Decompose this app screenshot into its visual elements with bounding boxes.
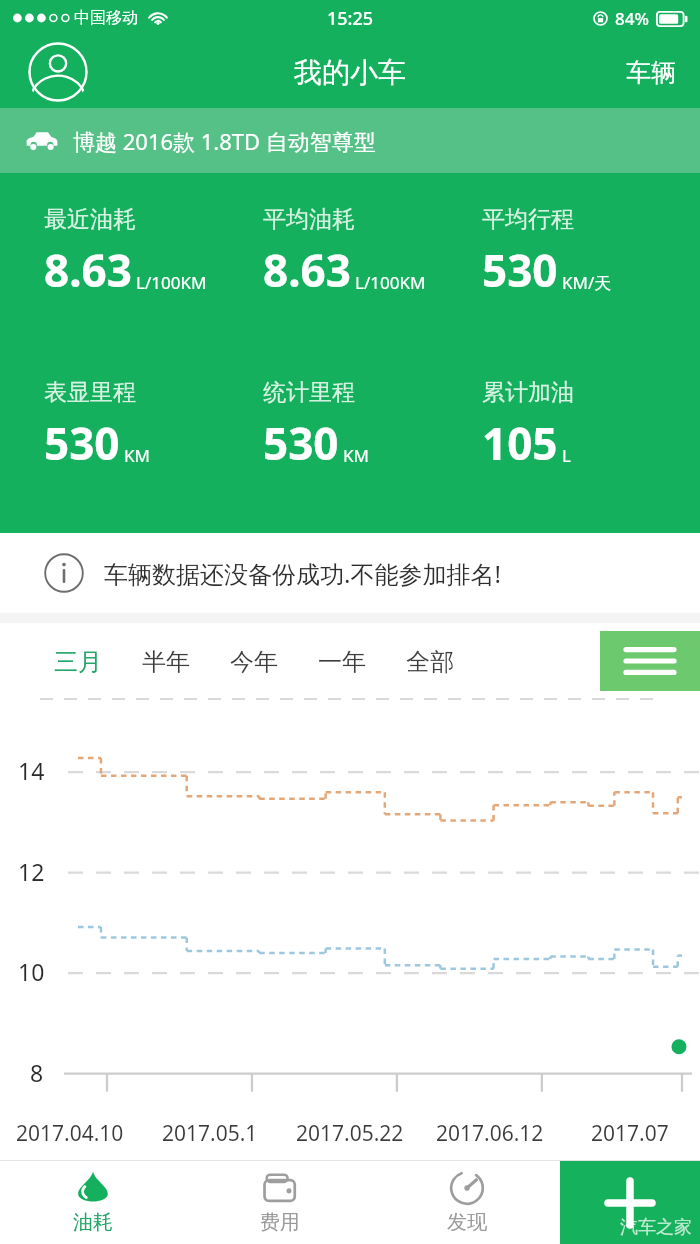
staticText: 2017.05.1 (162, 1119, 258, 1148)
staticText: L/100KM (136, 271, 207, 294)
staticText: 平均行程 (482, 205, 574, 234)
button[interactable]: 平均行程 (482, 205, 674, 300)
staticText: 表显里程 (44, 378, 136, 407)
staticText: 今年 (230, 647, 278, 677)
staticText: 8 (30, 1057, 44, 1088)
staticText: 半年 (142, 647, 190, 677)
button[interactable]: 一年 (308, 637, 376, 687)
button[interactable]: 平均油耗 (263, 205, 482, 300)
staticText: KM/天 (562, 271, 612, 294)
staticText: 530 (263, 413, 339, 473)
button[interactable]: Add record (560, 1161, 700, 1244)
button[interactable]: 油耗 (0, 1161, 186, 1244)
staticText: 530 (44, 413, 120, 473)
staticText: 最近油耗 (44, 205, 136, 234)
button[interactable]: 统计里程 (263, 378, 482, 473)
staticText: 平均油耗 (263, 205, 355, 234)
staticText: KM (343, 444, 369, 467)
staticText: 车辆数据还没备份成功.不能参加排名! (104, 557, 501, 590)
button[interactable]: 车辆数据还没备份成功.不能参加排名! (0, 533, 700, 613)
button[interactable]: 累计加油 (482, 378, 674, 473)
staticText: L (562, 444, 571, 467)
staticText: 车辆 (626, 57, 676, 88)
button[interactable]: 博越 2016款 1.8TD 自动智尊型 (0, 108, 700, 173)
button[interactable]: 全部 (396, 637, 464, 687)
button[interactable]: 最近油耗 (44, 205, 263, 300)
button[interactable]: Menu (600, 631, 700, 691)
staticText: L/100KM (355, 271, 426, 294)
staticText: 105 (482, 413, 558, 473)
staticText: 发现 (447, 1210, 487, 1235)
staticText: 530 (482, 240, 558, 300)
staticText: 12 (18, 856, 45, 887)
staticText: KM (124, 444, 150, 467)
staticText: 8.63 (263, 240, 351, 300)
staticText: 累计加油 (482, 378, 574, 407)
staticText: 15:25 (327, 6, 374, 31)
button[interactable]: 费用 (186, 1161, 373, 1244)
staticText: 2017.05.22 (296, 1119, 404, 1148)
staticText: 中国移动 (74, 8, 138, 28)
button[interactable]: 三月 (44, 637, 112, 687)
staticText: 我的小车 (294, 55, 406, 90)
staticText: 2017.06.12 (436, 1119, 544, 1148)
button[interactable]: 半年 (132, 637, 200, 687)
staticText: 统计里程 (263, 378, 355, 407)
staticText: 8.63 (44, 240, 132, 300)
staticText: 博越 2016款 1.8TD 自动智尊型 (73, 126, 376, 156)
button[interactable]: 发现 (373, 1161, 560, 1244)
staticText: 2017.04.10 (16, 1119, 124, 1148)
staticText: 汽车之家 (620, 1216, 692, 1239)
staticText: 2017.07 (591, 1119, 669, 1148)
button[interactable]: 表显里程 (44, 378, 263, 473)
button[interactable]: Profile (26, 40, 90, 104)
staticText: 一年 (318, 647, 366, 677)
staticText: 油耗 (73, 1210, 113, 1235)
button[interactable]: 车辆 (616, 49, 686, 96)
staticText: 费用 (260, 1210, 300, 1235)
staticText: 84% (615, 7, 649, 30)
button[interactable]: 今年 (220, 637, 288, 687)
staticText: 全部 (406, 647, 454, 677)
staticText: 三月 (54, 647, 102, 677)
staticText: 10 (18, 956, 45, 987)
staticText: 14 (18, 755, 45, 786)
